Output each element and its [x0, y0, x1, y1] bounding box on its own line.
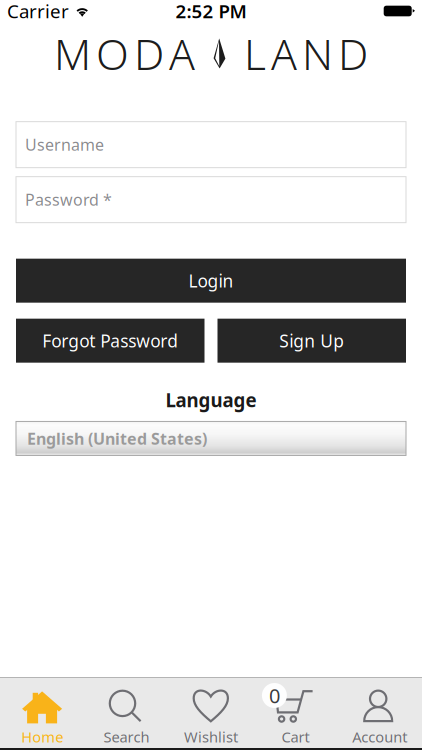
staticText: Login	[188, 269, 233, 292]
button[interactable]: Password *	[16, 177, 406, 223]
staticText: O	[96, 25, 129, 82]
staticText: N	[302, 25, 333, 82]
staticText: Password *	[25, 189, 112, 210]
staticText: D	[134, 25, 164, 82]
staticText: Username	[25, 134, 104, 155]
staticText: Search	[104, 727, 150, 746]
staticText: L	[244, 25, 266, 82]
staticText: M	[54, 25, 91, 82]
button[interactable]: Account	[338, 677, 422, 748]
button[interactable]: 0	[253, 677, 338, 748]
button[interactable]: Search	[84, 677, 169, 748]
button[interactable]: Forgot Password	[16, 319, 204, 363]
staticText: Cart	[281, 727, 309, 746]
staticText: Carrier	[7, 0, 69, 23]
button[interactable]: Login	[16, 259, 406, 303]
staticText: Home	[21, 727, 63, 746]
staticText: A	[271, 25, 297, 82]
button[interactable]: Sign Up	[217, 319, 406, 363]
staticText: Forgot Password	[42, 329, 178, 352]
staticText: D	[338, 25, 368, 82]
staticText: Sign Up	[279, 329, 344, 352]
staticText: Wishlist	[184, 727, 238, 746]
button[interactable]: Home	[0, 677, 84, 748]
staticText: Account	[352, 727, 407, 746]
staticText: A	[169, 25, 195, 82]
staticText: 0	[269, 682, 280, 709]
button[interactable]: Username	[16, 122, 406, 168]
staticText: 2:52 PM	[175, 0, 246, 23]
staticText: English (United States)	[27, 428, 207, 449]
button[interactable]: Wishlist	[169, 677, 253, 748]
staticText: Language	[165, 388, 256, 412]
